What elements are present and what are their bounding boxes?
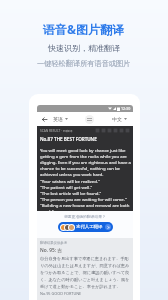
staticText: You will meet good luck by chance just l… [40,147,131,177]
button[interactable]: Back [39,114,49,124]
staticText: SCAN RESULT · 已翻译 [40,129,73,133]
staticText: 英语 [53,116,63,122]
staticText: No.87 THE BEST FORTUNE [40,136,97,142]
staticText: 翻译结果仅供参考 [40,241,68,245]
button[interactable]: 支付人工翻译 [58,222,113,232]
staticText: No.95 GOOD FORTUNE [40,291,82,296]
staticText: 12:30 [121,106,131,111]
staticText: 快速识别，精准翻译 [48,43,120,53]
button[interactable]: 中文 [112,116,127,122]
staticText: "Your wishes will be realized." "The pat… [40,178,131,211]
staticText: 支付人工翻译 [76,224,103,230]
staticText: 中文 [112,116,122,122]
button[interactable]: Swap languages [85,115,94,124]
staticText: No. 95: 吉 [40,247,63,254]
staticText: 自分自身を見出す事で幸運に恵まれます。手彫りの品は山または見えますが、同意すれば… [40,256,131,289]
button[interactable]: 英语 [53,116,68,122]
staticText: 一键轻松翻译所有语音或图片 [37,59,131,68]
staticText: 语音&图片翻译 [43,21,125,37]
staticText: 想要更准确的翻译结果？ [64,214,106,219]
